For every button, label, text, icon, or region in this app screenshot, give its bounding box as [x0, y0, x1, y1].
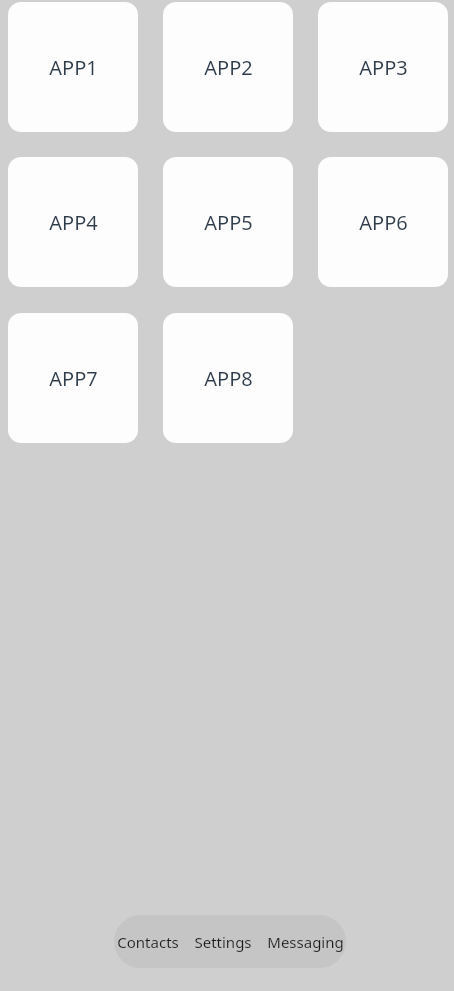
staticText: Contacts [117, 932, 179, 952]
button[interactable]: APP7 [8, 313, 138, 443]
button[interactable]: APP3 [318, 2, 448, 132]
staticText: APP2 [204, 54, 253, 81]
staticText: APP8 [204, 365, 253, 392]
staticText: APP5 [204, 209, 253, 236]
staticText: APP1 [49, 54, 98, 81]
staticText: APP7 [49, 365, 98, 392]
staticText: APP3 [359, 54, 408, 81]
button[interactable]: APP1 [8, 2, 138, 132]
button[interactable]: APP8 [163, 313, 293, 443]
button[interactable]: Messaging [265, 928, 346, 956]
button[interactable]: APP4 [8, 157, 138, 287]
button[interactable]: APP5 [163, 157, 293, 287]
staticText: APP6 [359, 209, 408, 236]
staticText: APP4 [49, 209, 98, 236]
button[interactable]: Contacts [115, 928, 181, 956]
button[interactable]: Settings [192, 928, 254, 956]
staticText: Settings [194, 932, 252, 952]
button[interactable]: APP2 [163, 2, 293, 132]
staticText: Messaging [267, 932, 344, 952]
button[interactable]: APP6 [318, 157, 448, 287]
